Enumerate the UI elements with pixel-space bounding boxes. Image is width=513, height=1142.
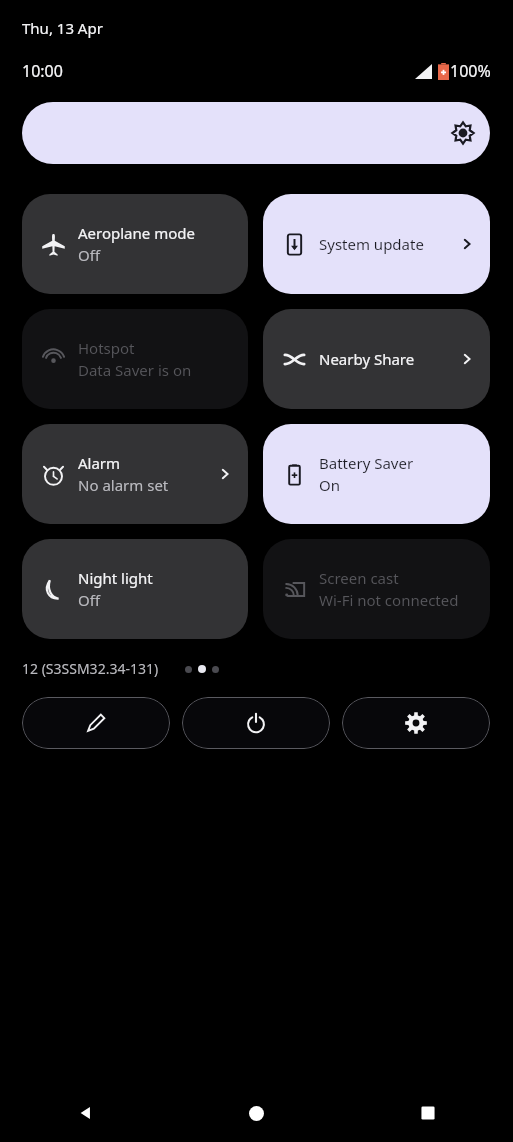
staticText: 100% [450,60,491,82]
staticText: Nearby Share [319,349,415,369]
staticText: Wi-Fi not connected [319,590,459,610]
button[interactable]: Power [182,697,330,749]
button[interactable]: Edit [22,697,170,749]
button[interactable]: Brightness [22,102,490,164]
button[interactable]: Aeroplane mode [22,194,248,294]
staticText: 10:00 [22,60,63,82]
staticText: Thu, 13 Apr [22,18,103,38]
button[interactable]: Screen cast [263,539,490,639]
button[interactable]: System update [263,194,490,294]
staticText: Off [78,245,101,265]
staticText: 12 (S3SSM32.34-131) [22,659,159,678]
button[interactable]: Home [171,1084,342,1142]
staticText: Off [78,590,101,610]
button[interactable]: Night light [22,539,248,639]
button[interactable]: Alarm [22,424,248,524]
staticText: Screen cast [319,568,399,588]
staticText: Battery Saver [319,453,414,473]
button[interactable]: Back [0,1084,171,1142]
staticText: Night light [78,568,153,588]
button[interactable]: Settings [342,697,490,749]
button[interactable]: Recent apps [342,1084,513,1142]
staticText: No alarm set [78,475,169,495]
staticText: Aeroplane mode [78,223,195,243]
staticText: Hotspot [78,338,135,358]
staticText: On [319,475,340,495]
staticText: System update [319,234,424,254]
staticText: Alarm [78,453,121,473]
button[interactable]: Battery Saver [263,424,490,524]
button[interactable]: Nearby Share [263,309,490,409]
button[interactable]: Hotspot [22,309,248,409]
staticText: Data Saver is on [78,360,192,380]
